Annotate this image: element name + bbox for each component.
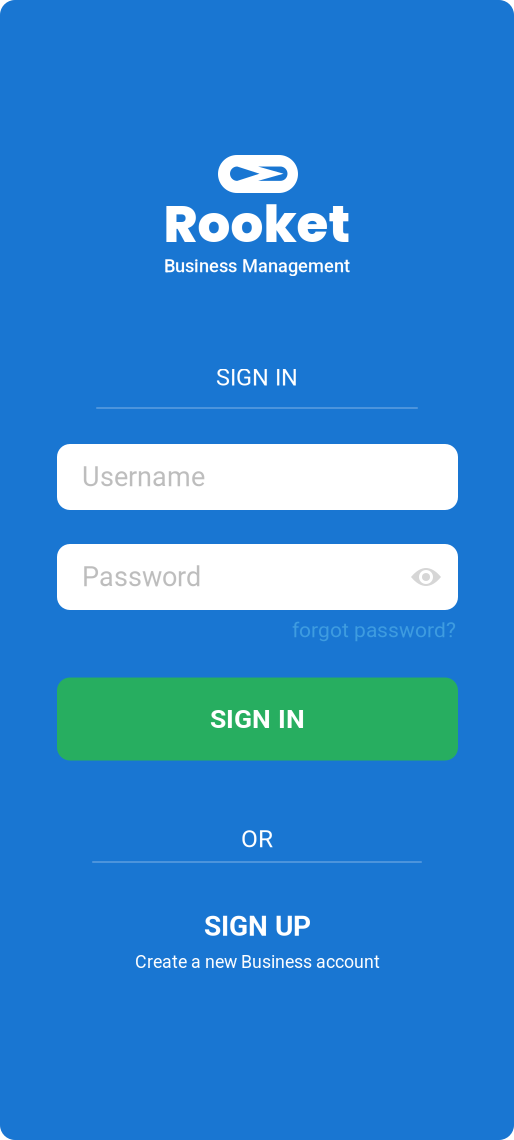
button[interactable]: SIGN UP [135,910,380,972]
staticText: Rooket [163,188,350,260]
button[interactable]: Username [57,444,458,510]
button[interactable]: SIGN IN [57,677,458,760]
button[interactable]: Show password [411,567,441,587]
button[interactable]: Password [57,544,458,610]
staticText: SIGN IN [216,364,298,391]
staticText: SIGN UP [204,910,311,942]
button[interactable]: forgot password? [292,618,456,642]
staticText: SIGN IN [210,703,305,735]
staticText: Username [82,461,205,493]
staticText: Business Management [164,255,350,277]
staticText: Create a new Business account [135,951,380,972]
staticText: forgot password? [292,618,456,642]
staticText: OR [241,825,273,853]
staticText: Password [82,561,201,593]
